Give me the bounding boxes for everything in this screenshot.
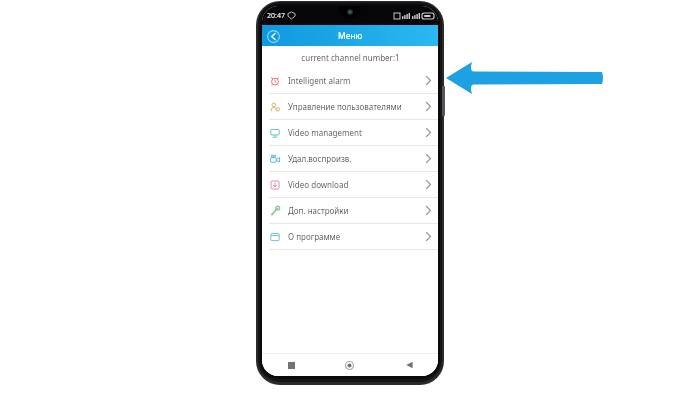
staticText: О программе [288,231,426,242]
button[interactable]: Recent apps [262,354,320,376]
staticText: Intelligent alarm [288,75,426,86]
button[interactable]: О программе [262,224,438,249]
staticText: Video management [288,127,426,138]
staticText: Управление пользователями [288,101,426,112]
button[interactable]: Удал.воспроизв. [262,146,438,171]
staticText: Меню [338,30,363,42]
button[interactable]: Intelligent alarm [262,68,438,93]
button[interactable]: Video download [262,172,438,197]
staticText: current channel number:1 [301,52,400,63]
button[interactable]: Video management [262,120,438,145]
button[interactable]: Back [379,354,438,376]
staticText: Доп. настройки [288,205,426,216]
button[interactable]: Home [320,354,379,376]
button[interactable]: Доп. настройки [262,198,438,223]
button[interactable]: Back [265,28,281,44]
button[interactable]: Управление пользователями [262,94,438,119]
staticText: Video download [288,179,426,190]
staticText: Удал.воспроизв. [288,153,426,164]
staticText: 20:47 [267,11,285,21]
